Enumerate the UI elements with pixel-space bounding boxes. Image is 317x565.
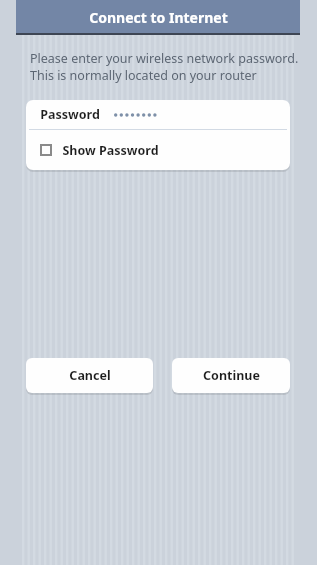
button[interactable]: Continue	[172, 358, 290, 393]
staticText: Show Password	[62, 142, 159, 159]
button[interactable]: Cancel	[26, 358, 153, 393]
staticText: Password	[40, 106, 100, 123]
staticText: Continue	[203, 367, 260, 384]
staticText: Connect to Internet	[89, 8, 228, 27]
staticText: Cancel	[69, 367, 111, 384]
button[interactable]: Show Password	[26, 130, 290, 170]
staticText: Please enter your wireless network passw…	[30, 50, 299, 84]
button[interactable]: Password	[26, 100, 290, 129]
